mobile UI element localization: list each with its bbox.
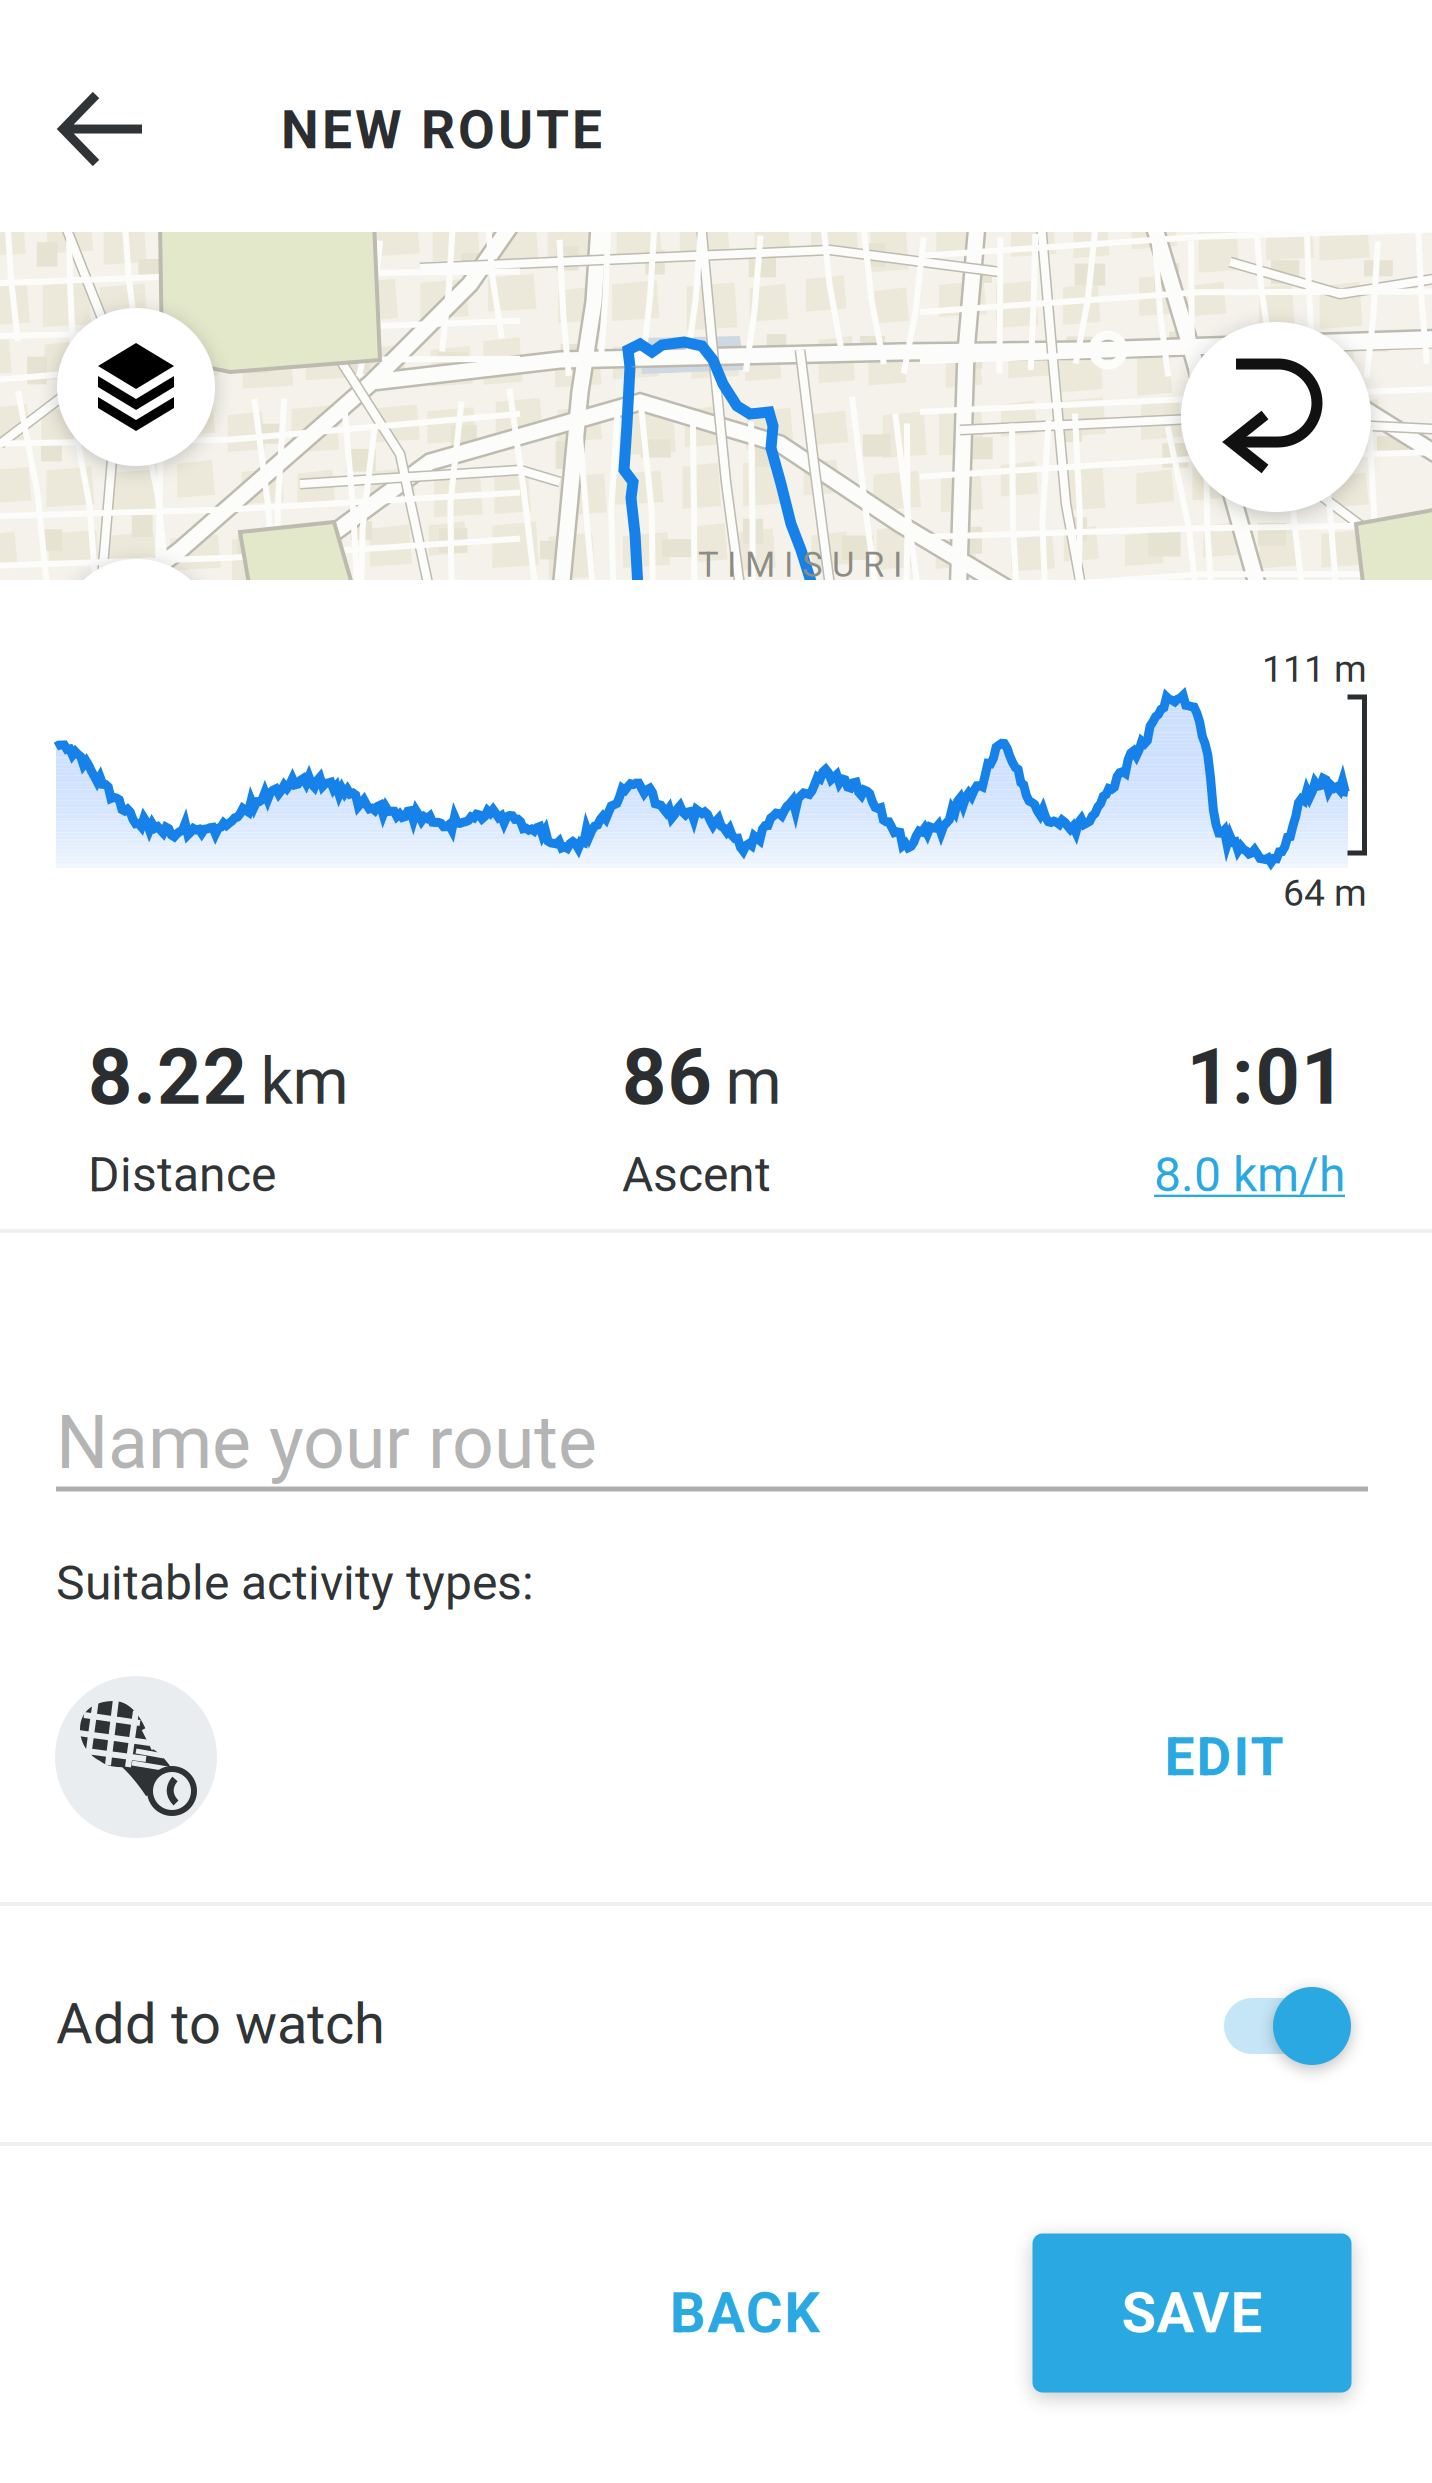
staticText: 8.22	[88, 1032, 246, 1123]
button[interactable]: Back	[18, 45, 188, 215]
button[interactable]: EDIT	[1134, 1702, 1314, 1812]
button[interactable]: Running	[55, 1676, 217, 1838]
staticText: Suitable activity types:	[56, 1555, 534, 1611]
staticText: Add to watch	[56, 1991, 385, 2057]
staticText: 64 m	[1283, 871, 1367, 915]
button[interactable]: Undo	[1181, 322, 1371, 512]
staticText: 1:01	[1186, 1032, 1345, 1123]
staticText: NEW ROUTE	[281, 99, 602, 161]
staticText: km	[260, 1044, 348, 1119]
staticText: 111 m	[1262, 647, 1367, 691]
staticText: m	[725, 1044, 781, 1119]
button[interactable]: Add to watch	[1138, 1970, 1414, 2082]
staticText: Ascent	[622, 1147, 771, 1203]
staticText: BACK	[670, 2280, 820, 2346]
staticText: SAVE	[1121, 2280, 1262, 2346]
button[interactable]: 8.0 km/h	[1154, 1147, 1345, 1203]
staticText: T I M I S U R I	[698, 545, 902, 585]
staticText: Name your route	[56, 1400, 597, 1486]
button[interactable]: Center map	[58, 559, 216, 717]
staticText: 86	[622, 1032, 711, 1123]
staticText: Distance	[88, 1147, 276, 1203]
button[interactable]: Map layers	[57, 308, 215, 466]
staticText: 8.0 km/h	[1154, 1147, 1345, 1203]
button[interactable]: BACK	[630, 2248, 860, 2378]
staticText: EDIT	[1164, 1726, 1283, 1788]
button[interactable]: SAVE	[1032, 2233, 1351, 2392]
